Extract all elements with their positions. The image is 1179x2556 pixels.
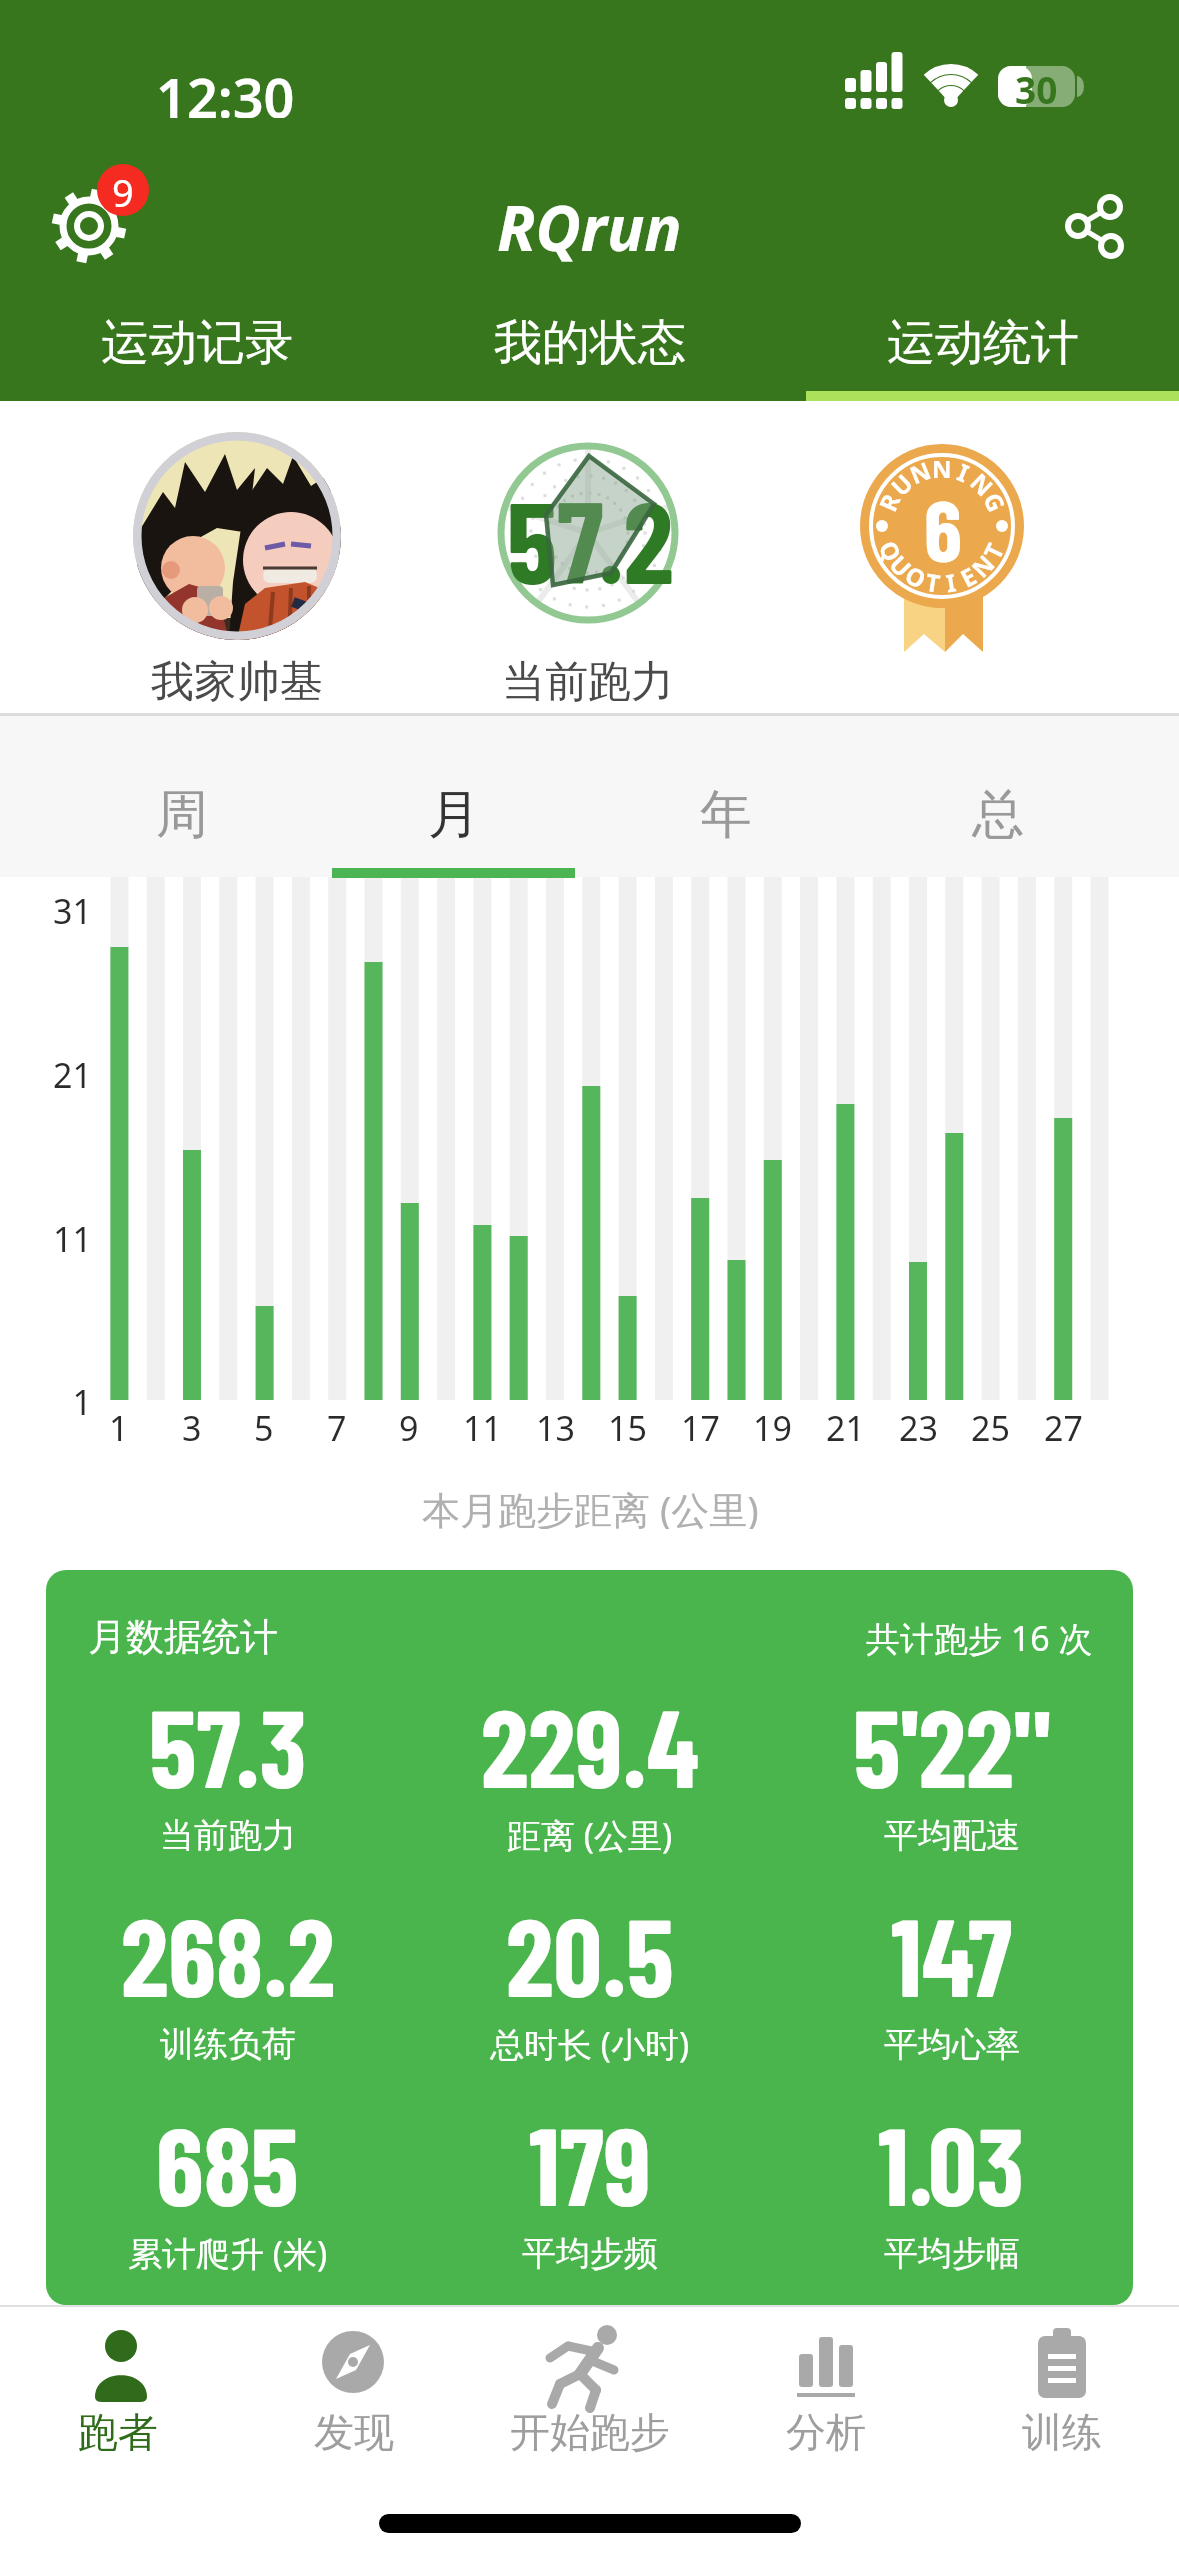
button[interactable]: 运动记录: [0, 305, 393, 380]
staticText: 25: [971, 1405, 1010, 1449]
button[interactable]: 总: [862, 780, 1134, 850]
staticText: 21: [826, 1405, 865, 1449]
staticText: 平均配速: [884, 1814, 1020, 1857]
staticText: 周: [156, 782, 208, 848]
staticText: 3: [182, 1405, 202, 1449]
staticText: 147: [891, 1889, 1012, 2009]
staticText: 20.5: [506, 1889, 674, 2009]
staticText: 17: [681, 1405, 720, 1449]
staticText: 距离 (公里): [507, 1812, 673, 1858]
staticText: 发现: [314, 2407, 394, 2453]
staticText: 我的状态: [494, 313, 686, 373]
button[interactable]: [944, 2310, 1179, 2460]
staticText: 19: [753, 1405, 792, 1449]
staticText: 11: [53, 1216, 92, 1256]
staticText: 31: [53, 888, 92, 928]
staticText: 685: [156, 2098, 299, 2218]
staticText: 本月跑步距离 (公里): [422, 1483, 759, 1529]
staticText: 15: [608, 1405, 647, 1449]
staticText: 9: [399, 1405, 419, 1449]
staticText: 运动记录: [101, 313, 293, 373]
staticText: 5'22": [853, 1680, 1051, 1800]
staticText: 13: [536, 1405, 575, 1449]
staticText: 月数据统计: [88, 1613, 278, 1661]
staticText: 268.2: [121, 1889, 335, 2009]
button[interactable]: [133, 432, 341, 640]
staticText: 累计爬升 (米): [128, 2230, 328, 2276]
staticText: 30: [1015, 64, 1058, 108]
button[interactable]: [708, 2310, 944, 2460]
staticText: 我家帅基: [151, 655, 323, 707]
staticText: 57.3: [149, 1680, 307, 1800]
button[interactable]: 我的状态: [393, 305, 786, 380]
staticText: 27: [1044, 1405, 1083, 1449]
staticText: 总: [972, 782, 1024, 848]
staticText: 1.03: [878, 2098, 1025, 2218]
button[interactable]: 月: [318, 780, 590, 850]
staticText: 开始跑步: [510, 2407, 670, 2453]
staticText: 5: [254, 1405, 274, 1449]
staticText: 179: [529, 2098, 651, 2218]
staticText: 1: [72, 1379, 92, 1419]
button[interactable]: [1050, 180, 1140, 275]
staticText: 平均步幅: [884, 2232, 1020, 2275]
staticText: 训练负荷: [160, 2023, 296, 2066]
button[interactable]: 周: [46, 780, 318, 850]
staticText: 年: [700, 782, 752, 848]
button[interactable]: [40, 155, 155, 270]
button[interactable]: [236, 2310, 472, 2460]
staticText: 平均心率: [884, 2023, 1020, 2066]
staticText: 1: [109, 1405, 129, 1449]
button[interactable]: 运动统计: [786, 305, 1179, 380]
staticText: 12:30: [156, 60, 295, 118]
staticText: 跑者: [78, 2407, 158, 2453]
staticText: 运动统计: [887, 313, 1079, 373]
staticText: 23: [899, 1405, 938, 1449]
staticText: 训练: [1022, 2407, 1102, 2453]
staticText: 当前跑力: [502, 655, 674, 707]
staticText: 总时长 (小时): [490, 2021, 690, 2067]
staticText: 当前跑力: [160, 1814, 296, 1857]
button[interactable]: [472, 2310, 708, 2460]
staticText: 57.2: [507, 470, 674, 592]
staticText: 7: [327, 1405, 347, 1449]
staticText: 月: [428, 782, 480, 848]
staticText: 平均步频: [522, 2232, 658, 2275]
button[interactable]: [0, 2310, 236, 2460]
staticText: 9: [112, 166, 134, 214]
staticText: 6: [924, 476, 962, 579]
staticText: 共计跑步 16 次: [866, 1615, 1093, 1661]
staticText: 11: [463, 1405, 502, 1449]
staticText: RQrun: [497, 185, 682, 265]
staticText: 21: [53, 1052, 92, 1092]
button[interactable]: 年: [590, 780, 862, 850]
staticText: 分析: [786, 2407, 866, 2453]
staticText: 229.4: [481, 1680, 699, 1800]
